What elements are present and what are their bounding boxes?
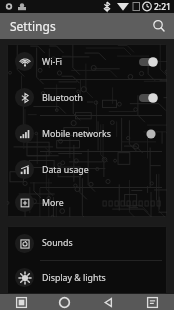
button[interactable]: Recents: [0, 294, 43, 310]
staticText: Wi-Fi: [42, 56, 138, 68]
button[interactable]: Menu: [130, 294, 174, 310]
button[interactable]: Back: [86, 294, 130, 310]
button[interactable]: Data usage: [7, 152, 167, 187]
button[interactable]: Wi-Fi: [7, 44, 167, 79]
staticText: 2:21: [154, 1, 171, 13]
staticText: Sounds: [42, 237, 157, 249]
button[interactable]: Bluetooth: [7, 80, 167, 115]
staticText: Mobile networks: [42, 128, 138, 140]
button[interactable]: More: [7, 188, 167, 217]
button[interactable]: Display & lights: [7, 261, 167, 294]
staticText: Settings: [10, 18, 56, 34]
staticText: Display & lights: [42, 272, 157, 284]
button[interactable]: Home: [43, 294, 86, 310]
button[interactable]: Search: [148, 15, 170, 37]
button[interactable]: Mobile networks: [7, 116, 167, 151]
staticText: Data usage: [42, 164, 157, 176]
button[interactable]: Sounds: [7, 226, 167, 260]
staticText: Bluetooth: [42, 92, 138, 104]
staticText: More: [42, 197, 157, 209]
